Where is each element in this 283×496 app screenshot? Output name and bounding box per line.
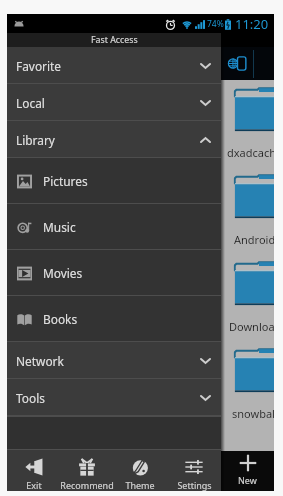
- button[interactable]: dxadcache: [221, 80, 274, 167]
- button[interactable]: Recommend: [60, 450, 113, 491]
- staticText: dxadcache: [227, 145, 274, 160]
- staticText: 11:20: [235, 15, 269, 33]
- staticText: Network: [16, 353, 64, 369]
- staticText: snowball: [232, 406, 274, 421]
- staticText: Favorite: [16, 58, 62, 74]
- staticText: Exit: [26, 479, 42, 491]
- button[interactable]: Settings: [167, 450, 221, 491]
- staticText: Local: [16, 95, 45, 111]
- button[interactable]: Books: [7, 296, 221, 342]
- staticText: Android: [234, 232, 274, 247]
- button[interactable]: Pictures: [7, 158, 221, 204]
- staticText: Recommend: [60, 479, 114, 491]
- staticText: Movies: [43, 265, 83, 281]
- button[interactable]: Favorite: [7, 47, 221, 84]
- button[interactable]: snowball: [221, 341, 274, 428]
- staticText: Pictures: [43, 173, 88, 189]
- staticText: Fast Access: [91, 34, 138, 46]
- staticText: Library: [16, 132, 55, 148]
- button[interactable]: Switch device: [221, 47, 274, 80]
- button[interactable]: Exit: [7, 450, 60, 491]
- staticText: Tools: [16, 390, 45, 406]
- staticText: 74%: [207, 18, 224, 30]
- staticText: New: [238, 474, 257, 486]
- staticText: Settings: [177, 479, 212, 491]
- button[interactable]: Library: [7, 121, 221, 158]
- button[interactable]: Download: [221, 254, 274, 341]
- button[interactable]: Music: [7, 204, 221, 250]
- button[interactable]: Theme: [113, 450, 167, 491]
- staticText: Download: [229, 319, 274, 334]
- button[interactable]: Movies: [7, 250, 221, 296]
- button[interactable]: Network: [7, 342, 221, 379]
- staticText: Music: [43, 219, 76, 235]
- button[interactable]: Tools: [7, 379, 221, 416]
- button[interactable]: New: [232, 452, 263, 488]
- button[interactable]: Local: [7, 84, 221, 121]
- button[interactable]: Android: [221, 167, 274, 254]
- staticText: Books: [43, 311, 78, 327]
- staticText: Theme: [125, 479, 155, 491]
